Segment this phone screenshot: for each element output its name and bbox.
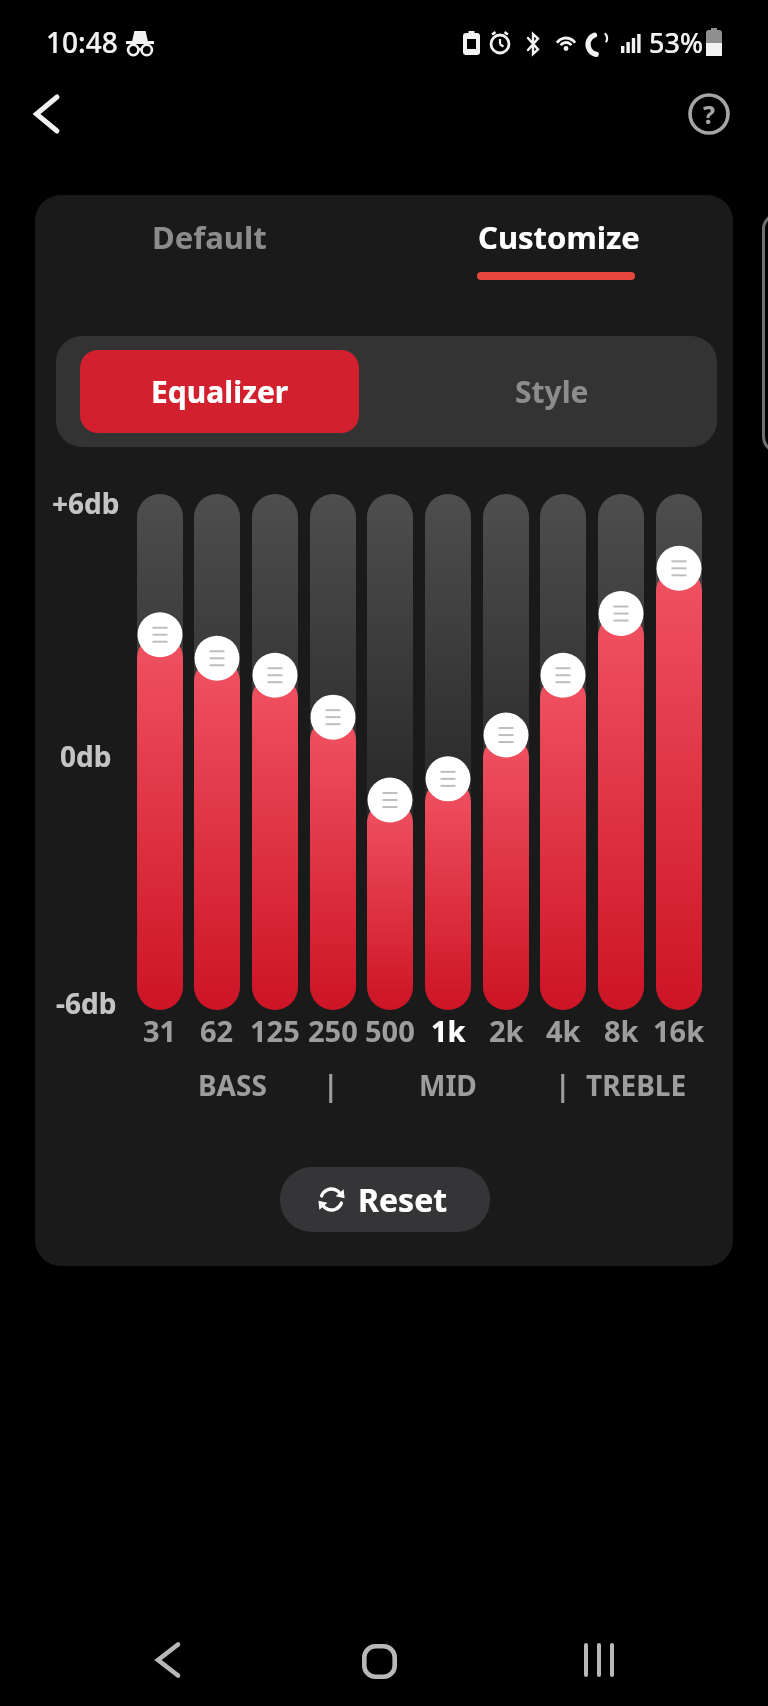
staticText: 2k [489, 1011, 524, 1050]
button[interactable]: Equalizer [80, 350, 359, 433]
staticText: Default [152, 216, 267, 258]
button[interactable] [144, 1636, 192, 1684]
button[interactable]: ? [685, 90, 733, 138]
staticText: 53% [649, 24, 703, 61]
staticText: -6db [56, 984, 117, 1022]
staticText: 250 [308, 1011, 358, 1050]
staticText: MID [419, 1066, 477, 1104]
staticText: 31 [143, 1011, 177, 1050]
staticText: BASS [198, 1066, 267, 1104]
button[interactable] [573, 1636, 625, 1684]
staticText: +6db [52, 484, 120, 522]
staticText: | [323, 1066, 339, 1104]
button[interactable] [540, 494, 586, 1010]
staticText: Style [515, 371, 589, 412]
staticText: 16k [653, 1011, 705, 1050]
button[interactable] [310, 494, 356, 1010]
button[interactable] [355, 1637, 403, 1685]
staticText: 500 [365, 1011, 415, 1050]
button[interactable] [367, 494, 413, 1010]
staticText: | [555, 1066, 571, 1104]
staticText: 0db [60, 737, 112, 775]
button[interactable] [425, 494, 471, 1010]
button[interactable] [656, 494, 702, 1010]
staticText: 4k [546, 1011, 581, 1050]
button[interactable] [252, 494, 298, 1010]
staticText: 10:48 [46, 23, 118, 61]
button[interactable] [483, 494, 529, 1010]
staticText: Equalizer [151, 371, 289, 412]
staticText: Reset [358, 1178, 448, 1222]
button[interactable] [598, 494, 644, 1010]
button[interactable]: Default [109, 209, 309, 265]
staticText: TREBLE [586, 1066, 687, 1104]
button[interactable]: Style [442, 350, 662, 432]
staticText: 1k [431, 1011, 466, 1050]
button[interactable]: Customize [459, 209, 659, 265]
staticText: 125 [250, 1011, 300, 1050]
button[interactable] [22, 90, 70, 138]
staticText: 8k [604, 1011, 639, 1050]
button[interactable] [137, 494, 183, 1010]
staticText: ? [703, 97, 715, 131]
staticText: Customize [478, 216, 640, 258]
button[interactable]: Reset [280, 1167, 490, 1232]
button[interactable] [194, 494, 240, 1010]
staticText: 62 [200, 1011, 234, 1050]
